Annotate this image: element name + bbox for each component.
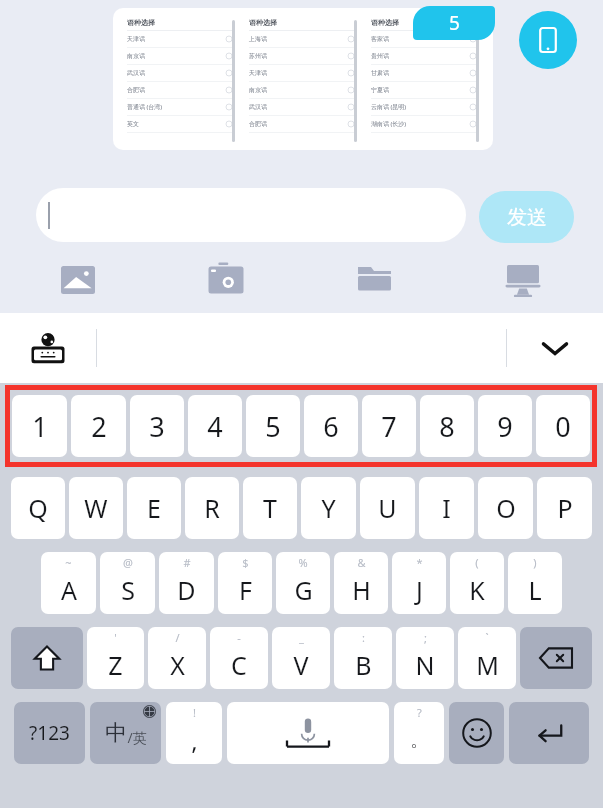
- staticText: 语种选择: [249, 18, 277, 27]
- staticText: ~: [65, 555, 72, 570]
- button[interactable]: `: [458, 627, 516, 689]
- button[interactable]: R: [185, 477, 239, 539]
- button[interactable]: Files: [354, 260, 396, 302]
- button[interactable]: 5: [246, 395, 300, 457]
- staticText: 中: [105, 719, 127, 747]
- button[interactable]: Camera: [205, 259, 247, 301]
- staticText: T: [263, 491, 277, 525]
- button[interactable]: 0: [536, 395, 590, 457]
- staticText: Y: [321, 491, 336, 525]
- button[interactable]: U: [360, 477, 415, 539]
- staticText: K: [469, 573, 485, 607]
- button[interactable]: ': [87, 627, 144, 689]
- button[interactable]: Space: [227, 702, 389, 764]
- staticText: ;: [424, 630, 427, 645]
- staticText: X: [170, 648, 185, 682]
- staticText: B: [355, 648, 372, 682]
- staticText: E: [147, 491, 161, 525]
- staticText: 普通话 (台湾): [127, 103, 163, 111]
- button[interactable]: (: [450, 552, 504, 614]
- button[interactable]: ?: [394, 702, 444, 764]
- button[interactable]: 中: [90, 702, 161, 764]
- button[interactable]: Gallery: [57, 259, 99, 301]
- staticText: ,: [191, 724, 198, 757]
- button[interactable]: 1: [12, 395, 67, 457]
- button[interactable]: P: [537, 477, 592, 539]
- staticText: 1: [32, 408, 48, 445]
- staticText: M: [476, 648, 499, 682]
- button[interactable]: ?123: [14, 702, 85, 764]
- button[interactable]: W: [69, 477, 123, 539]
- button[interactable]: O: [478, 477, 533, 539]
- button[interactable]: %: [276, 552, 330, 614]
- button[interactable]: 8: [420, 395, 474, 457]
- button[interactable]: 语种选择: [113, 8, 493, 150]
- button[interactable]: !: [166, 702, 222, 764]
- staticText: U: [378, 491, 397, 525]
- staticText: 武汉话: [127, 69, 145, 77]
- button[interactable]: [36, 188, 466, 242]
- staticText: $: [242, 555, 249, 570]
- staticText: -: [237, 630, 241, 645]
- button[interactable]: 6: [304, 395, 358, 457]
- staticText: 南京话: [249, 86, 267, 94]
- staticText: 上海话: [249, 35, 267, 43]
- button[interactable]: ;: [396, 627, 454, 689]
- button[interactable]: 发送: [479, 191, 574, 243]
- staticText: 贵州话: [371, 52, 389, 60]
- staticText: F: [239, 573, 252, 607]
- staticText: 语种选择: [127, 18, 155, 27]
- button[interactable]: Hide keyboard: [507, 313, 603, 383]
- staticText: A: [61, 573, 77, 607]
- staticText: 3: [149, 408, 165, 445]
- button[interactable]: I: [419, 477, 474, 539]
- button[interactable]: -: [210, 627, 268, 689]
- button[interactable]: Emoji: [449, 702, 504, 764]
- button[interactable]: #: [159, 552, 214, 614]
- button[interactable]: 2: [71, 395, 126, 457]
- button[interactable]: Desktop: [502, 260, 544, 302]
- button[interactable]: /: [148, 627, 206, 689]
- staticText: 云南话 (昆明): [371, 103, 407, 111]
- staticText: 0: [555, 408, 571, 445]
- staticText: 天津话: [249, 69, 267, 77]
- button[interactable]: ): [508, 552, 562, 614]
- button[interactable]: Change keyboard: [0, 313, 96, 383]
- button[interactable]: 9: [478, 395, 532, 457]
- staticText: Q: [28, 491, 48, 525]
- button[interactable]: $: [218, 552, 272, 614]
- button[interactable]: 3: [130, 395, 184, 457]
- staticText: &: [357, 555, 366, 570]
- staticText: ?123: [29, 720, 70, 746]
- button[interactable]: Q: [11, 477, 65, 539]
- button[interactable]: E: [127, 477, 181, 539]
- staticText: Z: [108, 648, 123, 682]
- staticText: 2: [91, 408, 107, 445]
- button[interactable]: Enter: [509, 702, 589, 764]
- button[interactable]: Device: [519, 11, 577, 69]
- button[interactable]: T: [243, 477, 297, 539]
- staticText: 武汉话: [249, 103, 267, 111]
- staticText: H: [352, 573, 371, 607]
- staticText: L: [528, 573, 542, 607]
- button[interactable]: *: [392, 552, 446, 614]
- button[interactable]: 5: [413, 6, 495, 40]
- button[interactable]: Backspace: [520, 627, 592, 689]
- button[interactable]: 4: [188, 395, 242, 457]
- staticText: 语种选择: [371, 18, 399, 27]
- staticText: 南京话: [127, 52, 145, 60]
- button[interactable]: ~: [41, 552, 96, 614]
- button[interactable]: Shift: [11, 627, 83, 689]
- staticText: 8: [439, 408, 455, 445]
- button[interactable]: 7: [362, 395, 416, 457]
- staticText: D: [177, 573, 196, 607]
- button[interactable]: &: [334, 552, 388, 614]
- button[interactable]: _: [272, 627, 330, 689]
- staticText: ): [533, 555, 537, 570]
- staticText: J: [416, 573, 423, 607]
- staticText: W: [84, 491, 108, 525]
- button[interactable]: :: [334, 627, 392, 689]
- button[interactable]: @: [100, 552, 155, 614]
- button[interactable]: Y: [301, 477, 356, 539]
